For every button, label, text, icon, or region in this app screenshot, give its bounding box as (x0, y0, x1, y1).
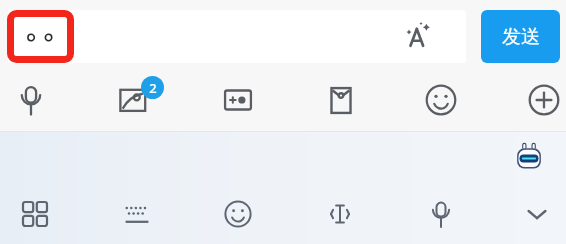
button[interactable]: Red packet (315, 74, 367, 126)
button[interactable]: More (518, 74, 566, 126)
staticText: 2 (149, 79, 157, 97)
button[interactable]: Photos (109, 74, 161, 126)
button[interactable]: Sticker (212, 74, 264, 126)
button[interactable]: Voice input (415, 188, 467, 240)
button[interactable]: Emoji (212, 188, 264, 240)
button[interactable]: Assistant (510, 138, 548, 176)
staticText: 发送 (502, 25, 540, 49)
button[interactable]: 发送 (481, 10, 560, 63)
button[interactable]: AI text assist (396, 13, 440, 57)
button[interactable]: Keyboard (111, 188, 163, 240)
button[interactable]: Voice message (5, 74, 57, 126)
button[interactable]: Emoji (415, 74, 467, 126)
button[interactable]: Move cursor (314, 188, 366, 240)
button[interactable] (8, 10, 466, 63)
button[interactable]: Collapse (511, 188, 563, 240)
button[interactable]: Apps (9, 188, 61, 240)
